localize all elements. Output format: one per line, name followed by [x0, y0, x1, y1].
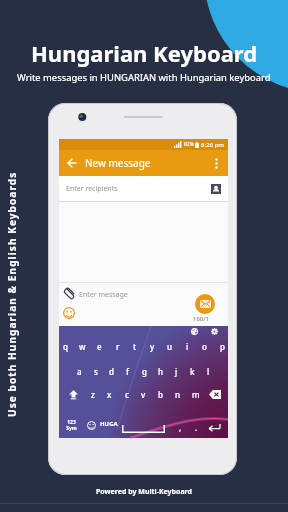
- button[interactable]: Theme: [189, 326, 199, 336]
- button[interactable]: i: [180, 339, 195, 353]
- staticText: 123 Sym: [66, 419, 77, 432]
- staticText: l: [207, 366, 210, 377]
- staticText: w: [79, 341, 86, 352]
- staticText: Enter recipients: [66, 184, 118, 194]
- button[interactable]: z: [85, 387, 100, 401]
- button[interactable]: t: [127, 339, 142, 353]
- staticText: i: [186, 341, 189, 352]
- staticText: ,: [179, 422, 182, 433]
- staticText: t: [133, 341, 137, 352]
- staticText: d: [109, 366, 114, 377]
- button[interactable]: g: [137, 364, 152, 378]
- staticText: e: [97, 341, 102, 352]
- button[interactable]: Contacts: [210, 183, 222, 195]
- button[interactable]: More options: [208, 155, 224, 171]
- staticText: f: [126, 366, 129, 377]
- staticText: 82%: [184, 141, 194, 148]
- button[interactable]: Enter recipients: [59, 176, 228, 201]
- button[interactable]: u: [162, 339, 177, 353]
- button[interactable]: s: [88, 364, 103, 378]
- staticText: m: [192, 389, 200, 400]
- button[interactable]: 123 Sym: [61, 416, 81, 434]
- button[interactable]: Enter: [205, 419, 223, 435]
- staticText: n: [175, 389, 181, 400]
- staticText: j: [175, 366, 178, 377]
- button[interactable]: n: [170, 387, 185, 401]
- staticText: g: [142, 366, 147, 377]
- button[interactable]: r: [110, 339, 125, 353]
- staticText: c: [125, 389, 129, 400]
- button[interactable]: .: [189, 420, 203, 434]
- staticText: Write messages in HUNGARIAN with Hungari…: [17, 71, 271, 84]
- button[interactable]: Backspace: [206, 387, 224, 401]
- button[interactable]: m: [188, 387, 203, 401]
- button[interactable]: Send message: [195, 294, 215, 314]
- button[interactable]: Settings: [209, 326, 219, 336]
- button[interactable]: c: [119, 387, 134, 401]
- staticText: s: [94, 366, 98, 377]
- button[interactable]: a: [72, 364, 87, 378]
- button[interactable]: Emoji: [84, 418, 98, 432]
- staticText: o: [202, 341, 207, 352]
- button[interactable]: p: [215, 339, 230, 353]
- button[interactable]: e: [92, 339, 107, 353]
- staticText: Enter message: [79, 290, 128, 300]
- button[interactable]: ,: [173, 420, 187, 434]
- button[interactable]: b: [153, 387, 168, 401]
- button[interactable]: Space: [122, 425, 165, 433]
- staticText: Hungarian Keyboard: [31, 38, 258, 68]
- button[interactable]: Attach: [61, 286, 77, 302]
- staticText: x: [107, 389, 112, 400]
- button[interactable]: k: [185, 364, 200, 378]
- button[interactable]: x: [102, 387, 117, 401]
- button[interactable]: o: [197, 339, 212, 353]
- staticText: New message: [85, 156, 151, 170]
- button[interactable]: q: [58, 339, 73, 353]
- staticText: Use both Hungarian & English Keyboards: [5, 171, 19, 417]
- button[interactable]: Back: [65, 156, 79, 170]
- staticText: q: [63, 341, 68, 352]
- staticText: y: [150, 341, 155, 352]
- staticText: r: [116, 341, 120, 352]
- staticText: Powered by Multi-Keyboard: [0, 487, 288, 497]
- staticText: h: [158, 366, 164, 377]
- button[interactable]: j: [169, 364, 184, 378]
- button[interactable]: y: [145, 339, 160, 353]
- button[interactable]: HUGA: [100, 420, 118, 428]
- button[interactable]: f: [120, 364, 135, 378]
- button[interactable]: h: [153, 364, 168, 378]
- staticText: z: [91, 389, 95, 400]
- button[interactable]: d: [104, 364, 119, 378]
- staticText: p: [220, 341, 225, 352]
- staticText: k: [190, 366, 195, 377]
- button[interactable]: Emoji: [62, 306, 76, 320]
- button[interactable]: v: [136, 387, 151, 401]
- button[interactable]: Back: [59, 150, 228, 176]
- button[interactable]: Shift: [65, 386, 81, 402]
- staticText: .: [195, 422, 198, 433]
- button[interactable]: l: [201, 364, 216, 378]
- staticText: HUGA: [100, 420, 118, 428]
- staticText: 6:26 pm: [201, 141, 224, 149]
- staticText: a: [77, 366, 82, 377]
- staticText: 160/1: [193, 315, 209, 323]
- staticText: b: [158, 389, 163, 400]
- staticText: u: [167, 341, 173, 352]
- button[interactable]: w: [75, 339, 90, 353]
- staticText: v: [141, 389, 146, 400]
